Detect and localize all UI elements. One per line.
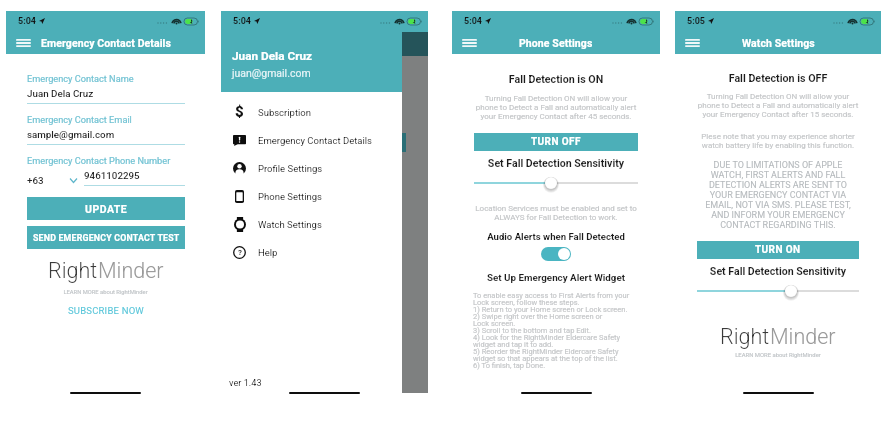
button[interactable]: Sensitivity slider [783, 283, 799, 299]
staticText: Phone Settings [519, 37, 593, 49]
staticText: Help [258, 247, 278, 258]
staticText: Audio Alerts when Fall Detected [452, 231, 660, 242]
staticText: 9461102295 [84, 170, 140, 181]
button[interactable]: ? [221, 238, 428, 266]
button[interactable]: Phone Settings [221, 182, 428, 210]
staticText: SUBSCRIBE NOW [68, 305, 144, 316]
staticText: Right [720, 324, 770, 349]
button[interactable]: Emergency Contact Name [27, 73, 185, 104]
staticText: Turning Fall Detection ON will allow you… [452, 94, 660, 121]
staticText: Watch Settings [742, 37, 815, 49]
button[interactable]: 9461102295 [84, 170, 185, 186]
staticText: ver 1.43 [229, 377, 262, 388]
staticText: Emergency Contact Details [258, 135, 372, 146]
staticText: Emergency Contact Phone Number [27, 155, 171, 166]
button[interactable]: UPDATE [27, 197, 185, 220]
button[interactable]: Profile Settings [221, 154, 428, 182]
staticText: Fall Detection is OFF [675, 72, 881, 85]
staticText: Juan Dela Cruz [232, 49, 313, 63]
button[interactable]: Emergency Contact Email [27, 114, 185, 145]
staticText: Emergency Contact Name [27, 73, 134, 84]
staticText: Set Up Emergency Alert Widget [452, 272, 660, 283]
staticText: Emergency Contact Email [27, 114, 132, 125]
staticText: ? [238, 248, 242, 257]
staticText: +63 [27, 175, 44, 186]
staticText: 5:04 [464, 16, 483, 27]
staticText: Set Fall Detection Sensitivity [452, 157, 660, 169]
button[interactable]: SUBSCRIBE NOW [6, 305, 205, 316]
staticText: 5:04 [233, 16, 252, 27]
staticText: Fall Detection is ON [452, 73, 660, 86]
staticText: UPDATE [85, 203, 128, 215]
staticText: Right [48, 258, 98, 283]
staticText: Minder [98, 258, 164, 283]
button[interactable]: Open navigation menu [11, 31, 35, 54]
staticText: Juan Dela Cruz [27, 88, 94, 99]
button[interactable]: Watch Settings [221, 210, 428, 238]
staticText: 5:05 [687, 16, 706, 27]
button[interactable]: TURN OFF [474, 133, 638, 151]
staticText: sample@gmail.com [27, 129, 115, 140]
button[interactable]: SEND EMERGENCY CONTACT TEST [27, 226, 185, 249]
staticText: TURN ON [755, 244, 801, 256]
staticText: To enable easy access to First Alerts fr… [473, 291, 652, 370]
staticText: Location Services must be enabled and se… [452, 204, 660, 222]
button[interactable]: Open navigation menu [680, 31, 704, 54]
button[interactable]: Audio alerts toggle [541, 247, 571, 261]
button[interactable]: $ [221, 98, 428, 126]
staticText: juan@gmail.com [232, 67, 311, 79]
staticText: LEARN MORE about RightMinder [6, 289, 205, 296]
staticText: TURN OFF [531, 136, 581, 148]
staticText: Emergency Contact Details [41, 37, 171, 49]
staticText: Subscription [258, 107, 312, 118]
staticText: Watch Settings [258, 219, 322, 230]
staticText: Profile Settings [258, 163, 323, 174]
staticText: Turning Fall Detection ON will allow you… [675, 92, 881, 119]
button[interactable]: Open navigation menu [457, 31, 481, 54]
button[interactable]: Sensitivity slider [543, 175, 559, 191]
button[interactable]: TURN ON [697, 241, 859, 259]
staticText: $ [235, 103, 244, 121]
staticText: DUE TO LIMITATIONS OF APPLE WATCH, FIRST… [675, 160, 881, 230]
staticText: SEND EMERGENCY CONTACT TEST [33, 233, 180, 243]
staticText: Set Fall Detection Sensitivity [675, 265, 881, 277]
button[interactable]: Country code +63 [27, 175, 84, 186]
staticText: Minder [770, 324, 836, 349]
staticText: LEARN MORE about RightMinder [675, 352, 881, 359]
staticText: 5:04 [18, 16, 37, 27]
staticText: Plese note that you may experience short… [675, 132, 881, 150]
button[interactable]: Emergency Contact Details [221, 126, 428, 154]
staticText: Phone Settings [258, 191, 322, 202]
